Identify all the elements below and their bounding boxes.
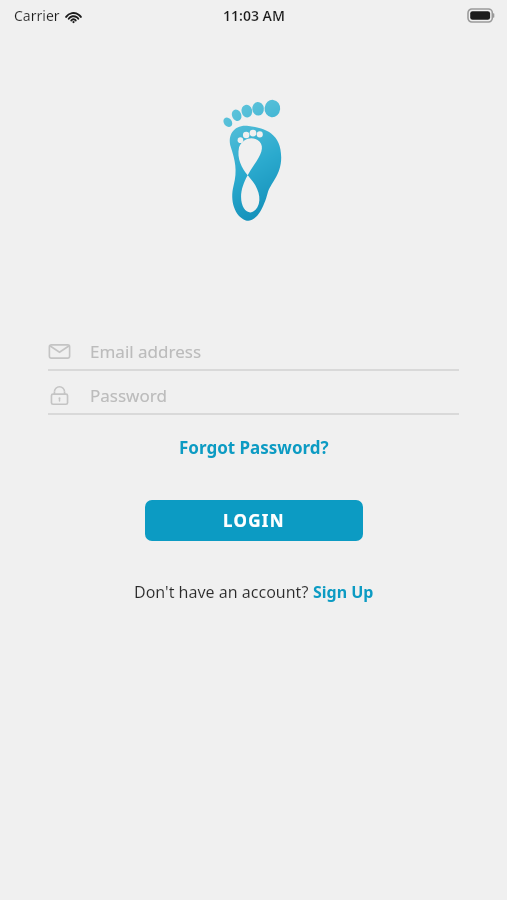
button[interactable]: Email address	[48, 334, 459, 371]
staticText: Sign Up	[313, 581, 374, 603]
staticText: Email address	[90, 340, 202, 363]
other: App logo	[220, 96, 288, 224]
staticText: LOGIN	[223, 509, 285, 532]
staticText: Forgot Password?	[179, 436, 329, 459]
button[interactable]: Password	[48, 378, 459, 415]
button[interactable]: Sign Up	[313, 581, 374, 603]
staticText: Password	[90, 384, 167, 407]
staticText: Carrier	[14, 6, 60, 25]
button[interactable]: Forgot Password?	[157, 432, 351, 463]
staticText: Don't have an account?	[134, 581, 313, 603]
button[interactable]: LOGIN	[145, 500, 363, 541]
staticText: 11:03 AM	[223, 6, 285, 25]
